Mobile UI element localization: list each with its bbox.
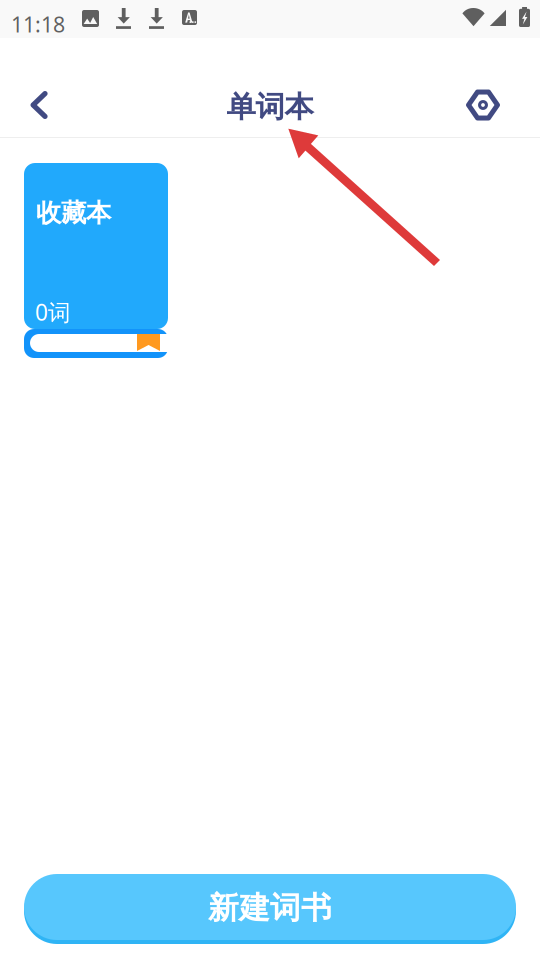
staticText: 0词 bbox=[35, 297, 71, 327]
button[interactable]: Back bbox=[8, 74, 70, 136]
button[interactable]: 新建词书 bbox=[24, 874, 516, 944]
staticText: 新建词书 bbox=[208, 889, 332, 927]
staticText: 单词本 bbox=[226, 88, 313, 125]
button[interactable]: Settings bbox=[452, 74, 514, 136]
button[interactable]: 收藏本 bbox=[24, 163, 168, 360]
staticText: 收藏本 bbox=[36, 197, 111, 229]
staticText: 11:18 bbox=[11, 10, 65, 38]
